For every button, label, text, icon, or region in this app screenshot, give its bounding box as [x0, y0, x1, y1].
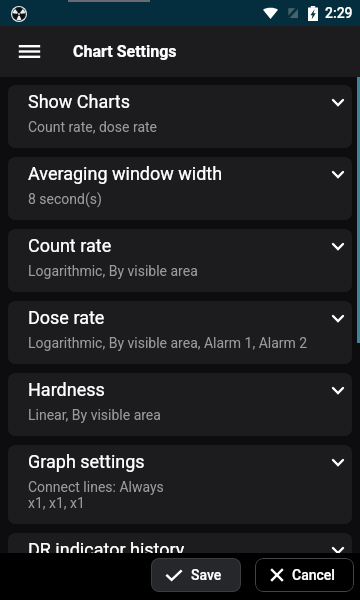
other: Expand	[332, 547, 344, 553]
button[interactable]: Show Charts	[8, 85, 352, 148]
staticText: 2:29	[325, 5, 353, 21]
staticText: Averaging window width	[28, 163, 223, 184]
staticText: Linear, By visible area	[28, 407, 161, 423]
button[interactable]: Hardness	[8, 373, 352, 436]
staticText: Graph settings	[28, 451, 145, 472]
staticText: Count rate, dose rate	[28, 119, 158, 135]
other: Expand	[332, 171, 344, 178]
staticText: Show Charts	[28, 91, 130, 112]
button[interactable]: Save	[151, 558, 241, 592]
other: Expand	[332, 99, 344, 106]
button[interactable]: DR indicator history	[8, 533, 352, 553]
staticText: Connect lines: Always	[28, 479, 164, 495]
button[interactable]: Cancel	[255, 558, 354, 592]
button[interactable]: Count rate	[8, 229, 352, 292]
button[interactable]: Dose rate	[8, 301, 352, 364]
other: Expand	[332, 387, 344, 394]
staticText: 8 second(s)	[28, 191, 102, 207]
other: Expand	[332, 315, 344, 322]
button[interactable]: Graph settings	[8, 445, 352, 524]
staticText: Logarithmic, By visible area, Alarm 1, A…	[28, 335, 308, 351]
staticText: Dose rate	[28, 307, 105, 328]
staticText: Cancel	[292, 567, 335, 583]
other: Expand	[332, 243, 344, 250]
staticText: Save	[191, 567, 222, 583]
staticText: Count rate	[28, 235, 112, 256]
staticText: Chart Settings	[73, 42, 177, 61]
staticText: x1, x1, x1	[28, 495, 85, 511]
staticText: Logarithmic, By visible area	[28, 263, 198, 279]
other: Expand	[332, 459, 344, 466]
staticText: Hardness	[28, 379, 105, 400]
button[interactable]: Open navigation menu	[5, 27, 53, 75]
staticText: DR indicator history	[28, 539, 185, 553]
button[interactable]: Averaging window width	[8, 157, 352, 220]
